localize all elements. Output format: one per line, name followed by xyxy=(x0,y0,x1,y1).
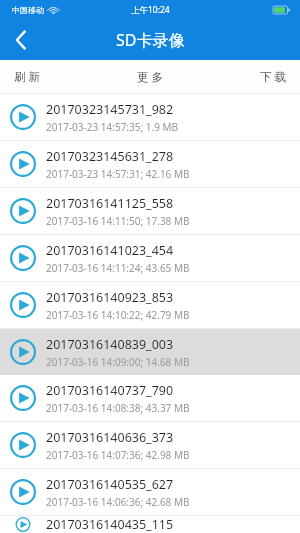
staticText: 中国移动 xyxy=(12,5,44,15)
other: Play xyxy=(8,477,38,507)
other: Play xyxy=(8,516,38,533)
button[interactable]: Play xyxy=(0,375,300,421)
button[interactable]: Back xyxy=(0,20,42,60)
staticText: 20170323145731_982 xyxy=(46,101,174,118)
staticText: 20170316140636_373 xyxy=(46,429,174,446)
staticText: 2017-03-16 14:08:38; 43.37 MB xyxy=(46,401,190,415)
staticText: 更 多 xyxy=(137,69,163,85)
button[interactable]: Play xyxy=(0,235,300,281)
button[interactable]: 刷 新 xyxy=(0,60,100,93)
staticText: 刷 新 xyxy=(14,69,40,85)
button[interactable]: Play xyxy=(0,516,300,533)
button[interactable]: Play xyxy=(0,329,300,375)
button[interactable]: Play xyxy=(0,141,300,187)
staticText: 2017-03-16 14:11:24; 43.65 MB xyxy=(46,261,190,275)
other: Play xyxy=(8,337,38,367)
other: Play xyxy=(8,383,38,413)
staticText: 20170316140923_853 xyxy=(46,289,174,306)
staticText: 上午10:24 xyxy=(131,4,170,16)
staticText: 2017-03-23 14:57:31; 42.16 MB xyxy=(46,167,190,181)
staticText: 20170316141023_454 xyxy=(46,242,174,259)
button[interactable]: 下 载 xyxy=(200,60,300,93)
other: Play xyxy=(8,149,38,179)
staticText: 20170316140839_003 xyxy=(46,336,174,353)
other: Play xyxy=(8,290,38,320)
button[interactable]: Play xyxy=(0,469,300,515)
staticText: 20170323145631_278 xyxy=(46,148,174,165)
staticText: 20170316140435_115 xyxy=(46,516,174,533)
button[interactable]: Play xyxy=(0,282,300,328)
button[interactable]: Play xyxy=(0,422,300,468)
staticText: 2017-03-16 14:06:36; 42.68 MB xyxy=(46,495,190,509)
staticText: 2017-03-16 14:09:00; 14.68 MB xyxy=(46,355,190,369)
staticText: 20170316140535_627 xyxy=(46,476,174,493)
staticText: 2017-03-16 14:11:50; 17.38 MB xyxy=(46,214,190,228)
staticText: 下 载 xyxy=(260,69,286,85)
staticText: SD卡录像 xyxy=(116,29,185,51)
button[interactable]: 更 多 xyxy=(100,60,200,93)
staticText: 2017-03-23 14:57:35; 1.9 MB xyxy=(46,120,179,134)
other: Play xyxy=(8,102,38,132)
staticText: 2017-03-16 14:10:22; 42.79 MB xyxy=(46,308,190,322)
other: Play xyxy=(8,243,38,273)
staticText: 2017-03-16 14:07:36; 42.98 MB xyxy=(46,448,190,462)
button[interactable]: Play xyxy=(0,94,300,140)
other: Play xyxy=(8,196,38,226)
staticText: 20170316140737_790 xyxy=(46,382,174,399)
staticText: 20170316141125_558 xyxy=(46,195,174,212)
button[interactable]: Play xyxy=(0,188,300,234)
other: Play xyxy=(8,430,38,460)
